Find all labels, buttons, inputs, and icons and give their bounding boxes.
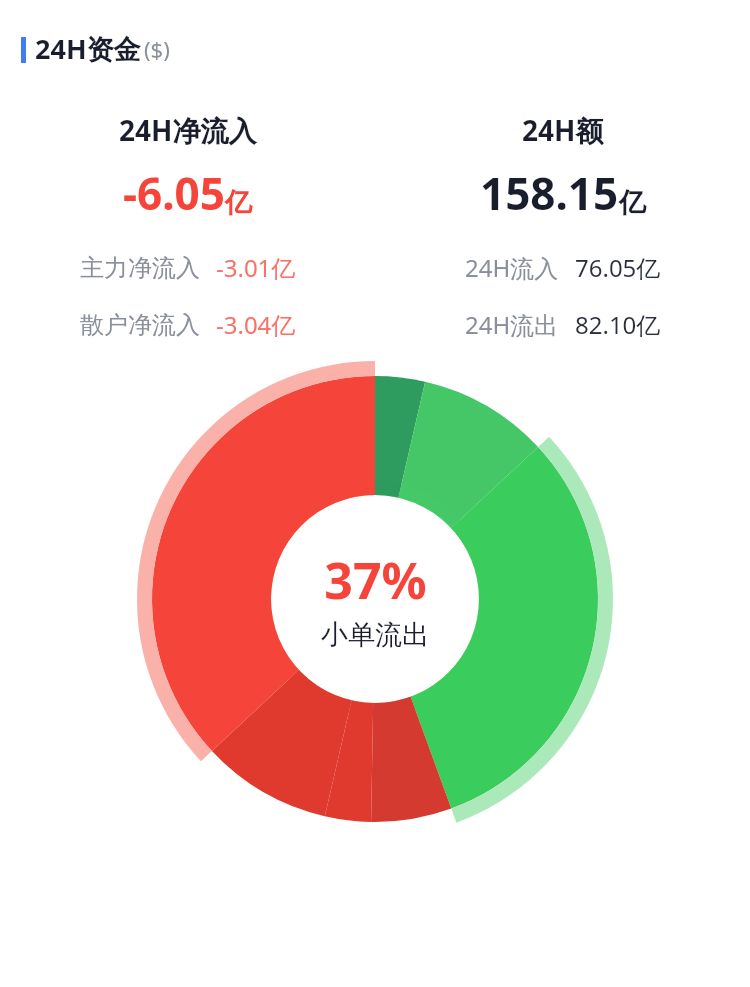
staticText: 24H资金 [35, 30, 141, 67]
staticText: 24H净流入 [119, 111, 257, 149]
staticText: 散户净流入 [80, 310, 200, 340]
staticText: 37% [324, 546, 427, 614]
staticText: 82.10亿 [575, 308, 661, 341]
staticText: 亿 [619, 186, 646, 220]
staticText: 76.05亿 [575, 251, 661, 284]
button[interactable]: 24H流入 [465, 251, 661, 284]
staticText: -3.01亿 [216, 251, 296, 284]
staticText: 小单流出 [321, 618, 429, 652]
button[interactable]: 24H流出 [465, 308, 661, 341]
staticText: 158.15 [480, 163, 619, 223]
button[interactable]: 主力净流入 [80, 251, 296, 284]
button[interactable]: 24H资金 [21, 30, 750, 67]
staticText: -6.05 [123, 163, 225, 223]
staticText: 亿 [225, 186, 252, 220]
staticText: 24H流出 [465, 308, 559, 341]
button[interactable]: 24H capital flow donut chart [137, 361, 613, 837]
button[interactable]: 散户净流入 [80, 308, 296, 341]
staticText: 24H流入 [465, 251, 559, 284]
staticText: 主力净流入 [80, 253, 200, 283]
staticText: -3.04亿 [216, 308, 296, 341]
staticText: 24H额 [522, 111, 604, 149]
staticText: ($) [144, 34, 170, 64]
